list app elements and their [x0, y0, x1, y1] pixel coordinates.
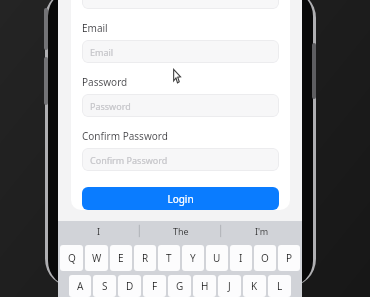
button[interactable]: T — [158, 245, 180, 271]
staticText: I'm — [255, 225, 269, 237]
staticText: Confirm Password — [82, 129, 168, 143]
staticText: Password — [82, 75, 128, 89]
staticText: L — [277, 279, 283, 293]
staticText: A — [77, 279, 84, 293]
button[interactable]: O — [254, 245, 276, 271]
staticText: G — [176, 279, 184, 293]
button[interactable] — [82, 0, 279, 9]
button[interactable]: S — [93, 275, 116, 297]
button[interactable]: J — [218, 275, 241, 297]
staticText: D — [126, 279, 134, 293]
button[interactable]: Y — [182, 245, 204, 271]
button[interactable]: E — [110, 245, 132, 271]
staticText: S — [102, 279, 108, 293]
staticText: Password — [90, 100, 131, 112]
staticText: Email — [90, 46, 114, 58]
staticText: W — [92, 251, 102, 265]
staticText: Login — [167, 192, 194, 206]
button[interactable]: L — [268, 275, 291, 297]
button[interactable]: F — [143, 275, 166, 297]
button[interactable]: Q — [60, 245, 83, 271]
staticText: I — [97, 225, 101, 237]
button[interactable]: Login — [82, 187, 279, 210]
staticText: K — [251, 279, 258, 293]
button[interactable]: G — [168, 275, 191, 297]
staticText: U — [213, 251, 221, 265]
staticText: Confirm Password — [90, 154, 168, 166]
button[interactable]: I — [230, 245, 252, 271]
staticText: H — [201, 279, 209, 293]
button[interactable]: H — [193, 275, 216, 297]
staticText: O — [261, 251, 269, 265]
button[interactable]: The — [140, 221, 221, 240]
button[interactable]: U — [206, 245, 228, 271]
other: Pointer — [172, 69, 183, 84]
button[interactable]: Confirm Password — [82, 148, 279, 171]
staticText: I — [239, 251, 243, 265]
staticText: T — [166, 251, 172, 265]
button[interactable]: D — [118, 275, 141, 297]
button[interactable]: I — [58, 221, 140, 240]
staticText: E — [118, 251, 124, 265]
button[interactable]: Email — [82, 40, 279, 63]
button[interactable]: K — [243, 275, 266, 297]
button[interactable]: Password — [82, 94, 279, 117]
staticText: The — [173, 225, 189, 237]
button[interactable]: R — [134, 245, 156, 271]
staticText: P — [286, 251, 293, 265]
staticText: Email — [82, 21, 108, 35]
staticText: Y — [190, 251, 196, 265]
staticText: J — [228, 279, 231, 293]
button[interactable]: A — [69, 275, 91, 297]
button[interactable]: P — [278, 245, 300, 271]
button[interactable]: I'm — [221, 221, 302, 240]
staticText: Q — [68, 251, 76, 265]
button[interactable]: W — [85, 245, 108, 271]
staticText: F — [152, 279, 158, 293]
staticText: R — [142, 251, 149, 265]
